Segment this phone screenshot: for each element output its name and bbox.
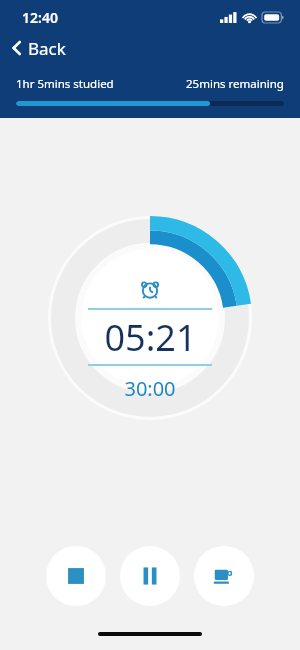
staticText: 05:21: [104, 313, 197, 362]
button[interactable]: Pause: [120, 546, 180, 606]
staticText: Back: [28, 37, 66, 60]
button[interactable]: Stop: [46, 546, 106, 606]
staticText: 25mins remaining: [186, 76, 284, 92]
staticText: 12:40: [22, 8, 58, 27]
button[interactable]: Back: [0, 32, 300, 64]
staticText: 30:00: [124, 375, 176, 402]
staticText: 1hr 5mins studied: [16, 76, 114, 92]
button[interactable]: Take a break: [194, 546, 254, 606]
